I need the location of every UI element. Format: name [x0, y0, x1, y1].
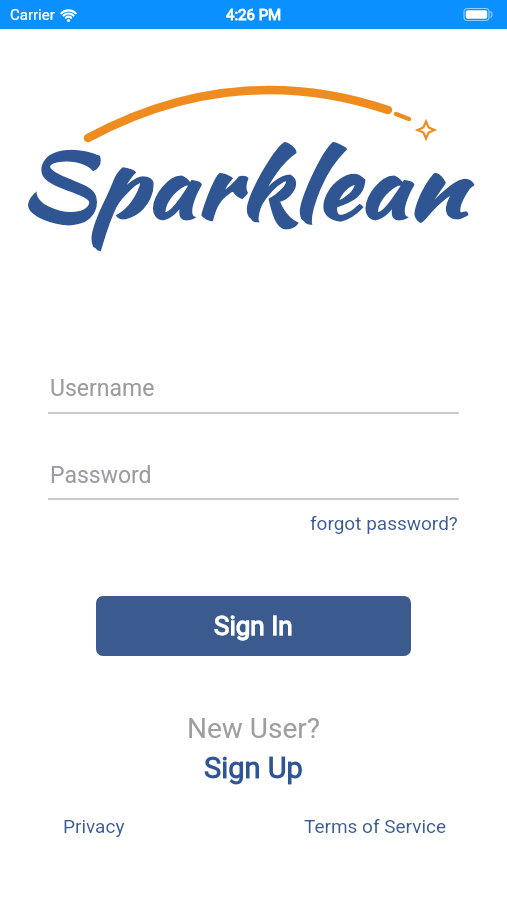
button[interactable]: Sign In	[96, 596, 411, 656]
button[interactable]: forgot password?	[310, 512, 458, 534]
staticText: Privacy	[63, 815, 125, 837]
button[interactable]: Terms of Service	[304, 815, 447, 837]
button[interactable]: Username	[48, 370, 459, 414]
button[interactable]: Password	[48, 457, 459, 500]
staticText: Password	[50, 462, 152, 489]
staticText: Sign In	[214, 611, 293, 641]
button[interactable]: Privacy	[63, 815, 125, 837]
staticText: 4:26 PM	[226, 6, 282, 24]
button[interactable]: Sign Up	[204, 751, 303, 785]
staticText: Carrier	[10, 6, 55, 24]
staticText: Sparklean	[19, 122, 465, 250]
staticText: Sign Up	[204, 751, 303, 785]
staticText: forgot password?	[310, 512, 458, 534]
staticText: Username	[50, 375, 155, 402]
staticText: Terms of Service	[304, 815, 447, 837]
staticText: New User?	[187, 712, 320, 745]
